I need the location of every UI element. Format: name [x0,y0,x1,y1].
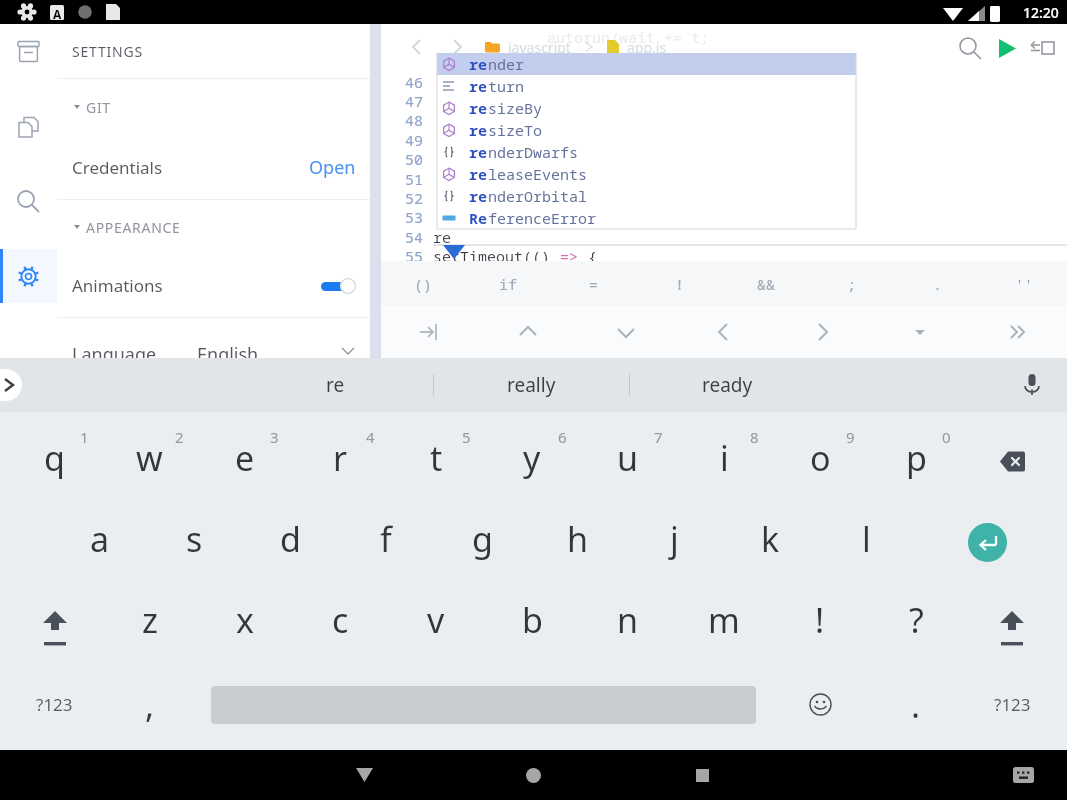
staticText: ferenceError [488,208,597,228]
button[interactable]: Project [0,24,57,78]
button[interactable]: Left [675,306,773,358]
button[interactable]: 3 [197,421,292,502]
button[interactable]: Shift [7,583,102,664]
button[interactable]: '' [981,261,1067,306]
staticText: g [472,516,493,562]
button[interactable]: Next [969,306,1067,358]
button[interactable]: Down [577,306,675,358]
staticText: q [44,435,65,481]
button[interactable]: d [242,502,338,583]
button[interactable]: 5 [388,421,484,502]
button[interactable]: Space [198,664,772,745]
staticText: 53 [381,207,423,227]
button[interactable]: 6 [484,421,580,502]
button[interactable]: Settings [0,249,57,303]
staticText: h [567,516,589,562]
button[interactable]: Tab [381,306,479,358]
button[interactable]: Up [479,306,577,358]
button[interactable]: ; [809,261,895,306]
button[interactable]: z [102,583,197,664]
button[interactable]: j [626,502,722,583]
button[interactable]: ! [772,583,868,664]
staticText: 50 [381,149,423,169]
staticText: A [53,6,62,22]
button[interactable]: ready [630,358,825,412]
button[interactable]: 4 [292,421,388,502]
button[interactable]: x [197,583,292,664]
button[interactable]: s [147,502,242,583]
button[interactable]: Recents [672,750,732,800]
button[interactable]: m [676,583,772,664]
button[interactable]: 1 [7,421,102,502]
button[interactable]: ? [868,583,964,664]
button[interactable]: n [580,583,676,664]
button[interactable]: re [437,185,856,207]
button[interactable]: Emoji [772,664,868,745]
button[interactable]: Credentials [57,135,370,199]
button[interactable]: l [818,502,914,583]
button[interactable]: g [434,502,530,583]
button[interactable]: Run [987,28,1027,68]
button[interactable]: 9 [772,421,868,502]
button[interactable]: , [102,664,198,745]
button[interactable]: ?123 [964,664,1060,745]
button[interactable]: && [723,261,809,306]
button[interactable]: Back [334,750,394,800]
button[interactable]: Shift [964,583,1060,664]
button[interactable]: Expand suggestions [0,369,22,401]
staticText: re [433,227,452,247]
button[interactable]: really [434,358,629,412]
button[interactable]: 7 [580,421,676,502]
button[interactable]: Re [437,207,856,229]
button[interactable]: Toggle preview [1023,28,1063,68]
button[interactable]: More [871,306,969,358]
button[interactable]: a [52,502,147,583]
button[interactable]: Forward [443,33,471,61]
staticText: u [617,435,639,481]
button[interactable]: () [381,261,466,306]
button[interactable]: re [437,141,856,163]
button[interactable]: b [484,583,580,664]
button[interactable]: ! [637,261,723,306]
button[interactable]: Animations [57,254,370,317]
button[interactable]: Backspace [964,421,1060,502]
button[interactable]: Search [0,174,57,228]
button[interactable]: ?123 [7,664,102,745]
button[interactable]: re [238,358,433,412]
button[interactable]: GIT [57,79,370,135]
button[interactable]: . [868,664,964,745]
button[interactable]: h [530,502,626,583]
button[interactable]: Voice input [1015,368,1049,402]
button[interactable]: if [466,261,551,306]
button[interactable]: re [437,53,856,75]
button[interactable]: = [551,261,637,306]
button[interactable]: re [437,97,856,119]
button[interactable]: APPEARANCE [57,200,370,254]
button[interactable]: Back [403,33,431,61]
staticText: Language [72,342,157,358]
button[interactable]: re [437,163,856,185]
button[interactable]: v [388,583,484,664]
button[interactable]: re [437,75,856,97]
button[interactable]: Language [57,318,370,358]
staticText: l [862,516,871,562]
button[interactable]: c [292,583,388,664]
button[interactable]: 2 [102,421,197,502]
button[interactable]: Files [0,100,57,154]
button[interactable]: 8 [676,421,772,502]
staticText: setTimeout(() [433,246,560,266]
button[interactable]: re [437,119,856,141]
button[interactable]: Home [503,750,563,800]
staticText: ready [702,372,753,398]
staticText: javascript [508,38,571,57]
button[interactable]: 0 [868,421,964,502]
button[interactable]: Switch keyboard [998,750,1048,800]
button[interactable]: Enter [914,502,1060,583]
button[interactable]: Right [773,306,871,358]
button[interactable]: k [722,502,818,583]
button[interactable]: f [338,502,434,583]
button[interactable]: Search [950,28,990,68]
staticText: ?123 [36,693,73,716]
staticText: re [469,186,488,206]
